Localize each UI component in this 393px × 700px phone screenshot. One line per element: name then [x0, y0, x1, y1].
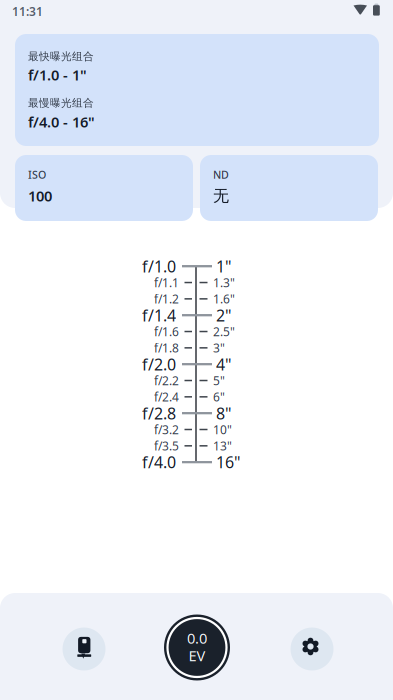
staticText: 1" — [216, 256, 232, 277]
staticText: 13" — [213, 438, 232, 454]
staticText: f/1.2 — [154, 291, 179, 307]
staticText: 2.5" — [213, 324, 235, 339]
staticText: 10" — [213, 421, 232, 437]
staticText: 最快曝光组合 — [28, 50, 94, 63]
staticText: 100 — [28, 186, 52, 205]
staticText: 4" — [216, 354, 232, 375]
staticText: 3" — [213, 340, 225, 356]
button[interactable]: ISO — [15, 155, 193, 221]
staticText: f/1.6 — [154, 324, 179, 339]
staticText: 16" — [216, 451, 241, 473]
staticText: 1.3" — [213, 275, 235, 290]
staticText: ISO — [28, 167, 46, 182]
staticText: f/3.5 — [154, 438, 179, 454]
button[interactable]: ND — [200, 155, 378, 221]
button[interactable]: Exposure value — [164, 614, 230, 680]
button[interactable]: Settings — [290, 627, 333, 670]
staticText: 1.6" — [213, 291, 235, 307]
button[interactable]: Light meter — [62, 627, 105, 670]
staticText: ND — [213, 167, 229, 182]
staticText: 无 — [213, 186, 229, 206]
staticText: EV — [188, 646, 205, 665]
staticText: f/4.0 — [142, 451, 176, 473]
staticText: f/4.0 - 16" — [28, 112, 95, 131]
staticText: f/1.0 - 1" — [28, 65, 87, 84]
staticText: f/2.4 — [154, 389, 179, 405]
staticText: 2" — [216, 305, 232, 326]
staticText: f/2.0 — [142, 354, 176, 375]
staticText: 5" — [213, 372, 225, 388]
staticText: 6" — [213, 389, 225, 405]
staticText: f/2.2 — [154, 372, 179, 388]
staticText: f/2.8 — [142, 402, 176, 424]
staticText: 0.0 — [187, 628, 207, 648]
staticText: 11:31 — [12, 3, 43, 19]
staticText: f/1.1 — [154, 275, 179, 290]
staticText: f/1.8 — [154, 340, 179, 356]
staticText: 8" — [216, 402, 232, 424]
staticText: f/3.2 — [154, 421, 179, 437]
staticText: f/1.0 — [142, 256, 176, 277]
staticText: f/1.4 — [142, 305, 176, 326]
staticText: 最慢曝光组合 — [28, 96, 94, 110]
